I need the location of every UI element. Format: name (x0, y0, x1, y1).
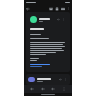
button[interactable]: More options (61, 17, 66, 22)
button[interactable]: Archive (48, 6, 54, 12)
button[interactable]: Reply (26, 75, 70, 84)
button[interactable]: More options (66, 6, 71, 11)
button[interactable]: Reply all (40, 86, 46, 92)
button[interactable]: Forward (50, 86, 56, 92)
button[interactable]: More options (63, 77, 68, 82)
button[interactable]: Reply (56, 17, 61, 22)
button[interactable]: Reply (28, 14, 68, 25)
button[interactable]: Back (25, 6, 31, 12)
button[interactable]: Reply (58, 77, 63, 82)
button[interactable]: Mark unread (60, 6, 66, 12)
button[interactable]: More (61, 86, 67, 92)
button[interactable]: Reply (29, 86, 35, 92)
button[interactable] (30, 64, 50, 65)
button[interactable]: Delete (54, 6, 60, 12)
